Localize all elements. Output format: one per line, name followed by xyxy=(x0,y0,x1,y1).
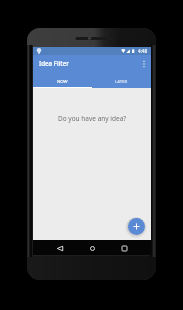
staticText: Do you have any idea? xyxy=(58,114,127,123)
button[interactable]: Home xyxy=(85,241,99,255)
button[interactable]: Back xyxy=(53,241,67,255)
staticText: 4:48 xyxy=(138,48,148,54)
button[interactable]: More options xyxy=(137,57,151,71)
button[interactable]: NOW xyxy=(33,72,92,88)
button[interactable]: LATER xyxy=(92,72,151,88)
staticText: Idea Filter xyxy=(39,59,69,67)
staticText: NOW xyxy=(57,78,68,84)
button[interactable]: Recent apps xyxy=(117,241,131,255)
staticText: LATER xyxy=(115,78,128,84)
button[interactable]: Add idea xyxy=(128,218,145,235)
